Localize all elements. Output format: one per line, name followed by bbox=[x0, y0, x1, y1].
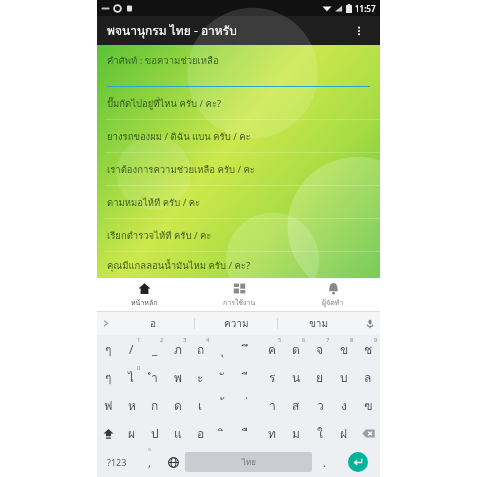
button[interactable]: ข bbox=[332, 335, 356, 363]
button[interactable]: อ bbox=[113, 312, 194, 335]
staticText: ขาม bbox=[309, 316, 329, 332]
staticText: แ bbox=[174, 424, 182, 443]
button[interactable]: ยางรถของผม / ดิฉัน แบน ครับ / คะ bbox=[97, 120, 380, 152]
button[interactable]: ใ bbox=[308, 419, 332, 447]
button[interactable]: Expand bbox=[97, 312, 113, 335]
staticText: ฟ bbox=[104, 396, 113, 415]
button[interactable]: ความ bbox=[195, 312, 277, 335]
button[interactable]: ท bbox=[260, 419, 284, 447]
button[interactable]: ำ bbox=[143, 363, 166, 391]
button[interactable]: ไทย bbox=[185, 452, 312, 472]
button[interactable]: ุ bbox=[212, 335, 236, 363]
button[interactable]: ช bbox=[356, 335, 380, 363]
button[interactable]: ฃ bbox=[356, 391, 380, 419]
button[interactable]: ี bbox=[236, 363, 260, 391]
button[interactable]: ึ bbox=[236, 335, 260, 363]
button[interactable]: ้ bbox=[212, 391, 236, 419]
button[interactable]: ว bbox=[308, 391, 332, 419]
button[interactable]: หน้าหลัก bbox=[97, 278, 192, 311]
button[interactable]: ะ bbox=[189, 363, 212, 391]
staticText: คุณมีแกลลอนน้ำมันไหม ครับ / คะ? bbox=[107, 258, 251, 273]
button[interactable]: _ bbox=[143, 335, 166, 363]
button[interactable]: . bbox=[312, 447, 336, 477]
button[interactable]: ป bbox=[143, 419, 166, 447]
button[interactable]: Backspace bbox=[356, 419, 380, 447]
button[interactable]: ิ bbox=[212, 419, 236, 447]
button[interactable]: ั bbox=[212, 363, 236, 391]
staticText: ค bbox=[268, 340, 277, 359]
staticText: ความ bbox=[224, 316, 249, 332]
staticText: 8 bbox=[350, 336, 354, 344]
button[interactable]: ห bbox=[120, 391, 143, 419]
button[interactable]: ขาม bbox=[278, 312, 360, 335]
button[interactable]: ส bbox=[284, 391, 308, 419]
button[interactable]: Shift bbox=[97, 419, 120, 447]
staticText: , bbox=[148, 455, 151, 470]
button[interactable]: ต bbox=[284, 335, 308, 363]
staticText: ฃ bbox=[364, 396, 373, 415]
staticText: พ bbox=[174, 368, 182, 387]
button[interactable]: เรียกตำรวจไห้ที ครับ / คะ bbox=[97, 219, 380, 251]
staticText: ร bbox=[269, 368, 276, 387]
staticText: ห bbox=[128, 396, 136, 415]
staticText: ไ bbox=[128, 368, 135, 387]
button[interactable]: ล bbox=[356, 363, 380, 391]
staticText: บ bbox=[340, 368, 348, 387]
staticText: 2 bbox=[160, 336, 164, 344]
button[interactable]: เราต้องการความช่วยเหลือ ครับ / คะ bbox=[97, 153, 380, 185]
button[interactable]: ด bbox=[166, 391, 189, 419]
button[interactable]: Voice input bbox=[360, 312, 380, 335]
button[interactable]: ื bbox=[236, 419, 260, 447]
button[interactable]: ๆ bbox=[97, 335, 120, 363]
staticText: การใช้งาน bbox=[223, 297, 256, 308]
button[interactable]: ผ bbox=[120, 419, 143, 447]
button[interactable]: การใช้งาน bbox=[192, 278, 286, 311]
staticText: 4 bbox=[206, 336, 210, 344]
button[interactable]: ย bbox=[308, 363, 332, 391]
staticText: เรียกตำรวจไห้ที ครับ / คะ bbox=[107, 228, 212, 243]
button[interactable]: ฝ bbox=[332, 419, 356, 447]
staticText: ท bbox=[268, 424, 276, 443]
button[interactable]: ฟ bbox=[97, 391, 120, 419]
button[interactable]: ง bbox=[332, 391, 356, 419]
button[interactable]: พ bbox=[166, 363, 189, 391]
staticText: ยางรถของผม / ดิฉัน แบน ครับ / คะ bbox=[107, 129, 251, 144]
button[interactable]: เ bbox=[189, 391, 212, 419]
button[interactable]: , bbox=[137, 447, 161, 477]
button[interactable]: Enter bbox=[348, 452, 368, 472]
button[interactable]: ภ bbox=[166, 335, 189, 363]
button[interactable]: ค bbox=[260, 335, 284, 363]
staticText: ๆ bbox=[105, 340, 112, 359]
button[interactable]: ่ bbox=[236, 391, 260, 419]
button[interactable]: ก bbox=[143, 391, 166, 419]
staticText: ก bbox=[151, 396, 159, 415]
staticText: ำ bbox=[151, 368, 158, 387]
button[interactable]: บ bbox=[332, 363, 356, 391]
button[interactable]: า bbox=[260, 391, 284, 419]
staticText: _ bbox=[152, 341, 158, 357]
button[interactable]: แ bbox=[166, 419, 189, 447]
button[interactable]: ?123 bbox=[97, 447, 137, 477]
button[interactable]: คุณมีแกลลอนน้ำมันไหม ครับ / คะ? bbox=[97, 252, 380, 278]
staticText: ม bbox=[292, 424, 300, 443]
button[interactable]: Change keyboard language bbox=[161, 447, 185, 477]
button[interactable]: ถ bbox=[189, 335, 212, 363]
staticText: ต bbox=[292, 340, 300, 359]
staticText: 7 bbox=[326, 336, 330, 344]
button[interactable]: ไ bbox=[120, 363, 143, 391]
button[interactable]: More options bbox=[348, 20, 370, 42]
staticText: ใ bbox=[317, 424, 323, 443]
button[interactable]: ผู้จัดทำ bbox=[286, 278, 380, 311]
button[interactable]: น bbox=[284, 363, 308, 391]
staticText: . bbox=[323, 455, 326, 470]
button[interactable]: ตามหมอไห้ที ครับ / คะ bbox=[97, 186, 380, 218]
button[interactable]: / bbox=[120, 335, 143, 363]
button[interactable]: ๆ bbox=[97, 363, 120, 391]
button[interactable]: จ bbox=[308, 335, 332, 363]
button[interactable]: อ bbox=[189, 419, 212, 447]
staticText: ผ bbox=[128, 424, 136, 443]
button[interactable]: ร bbox=[260, 363, 284, 391]
button[interactable]: ปั๊มกัดไปอยู่ที่ไหน ครับ / คะ? bbox=[97, 87, 380, 119]
staticText: า bbox=[269, 396, 276, 415]
button[interactable]: ม bbox=[284, 419, 308, 447]
